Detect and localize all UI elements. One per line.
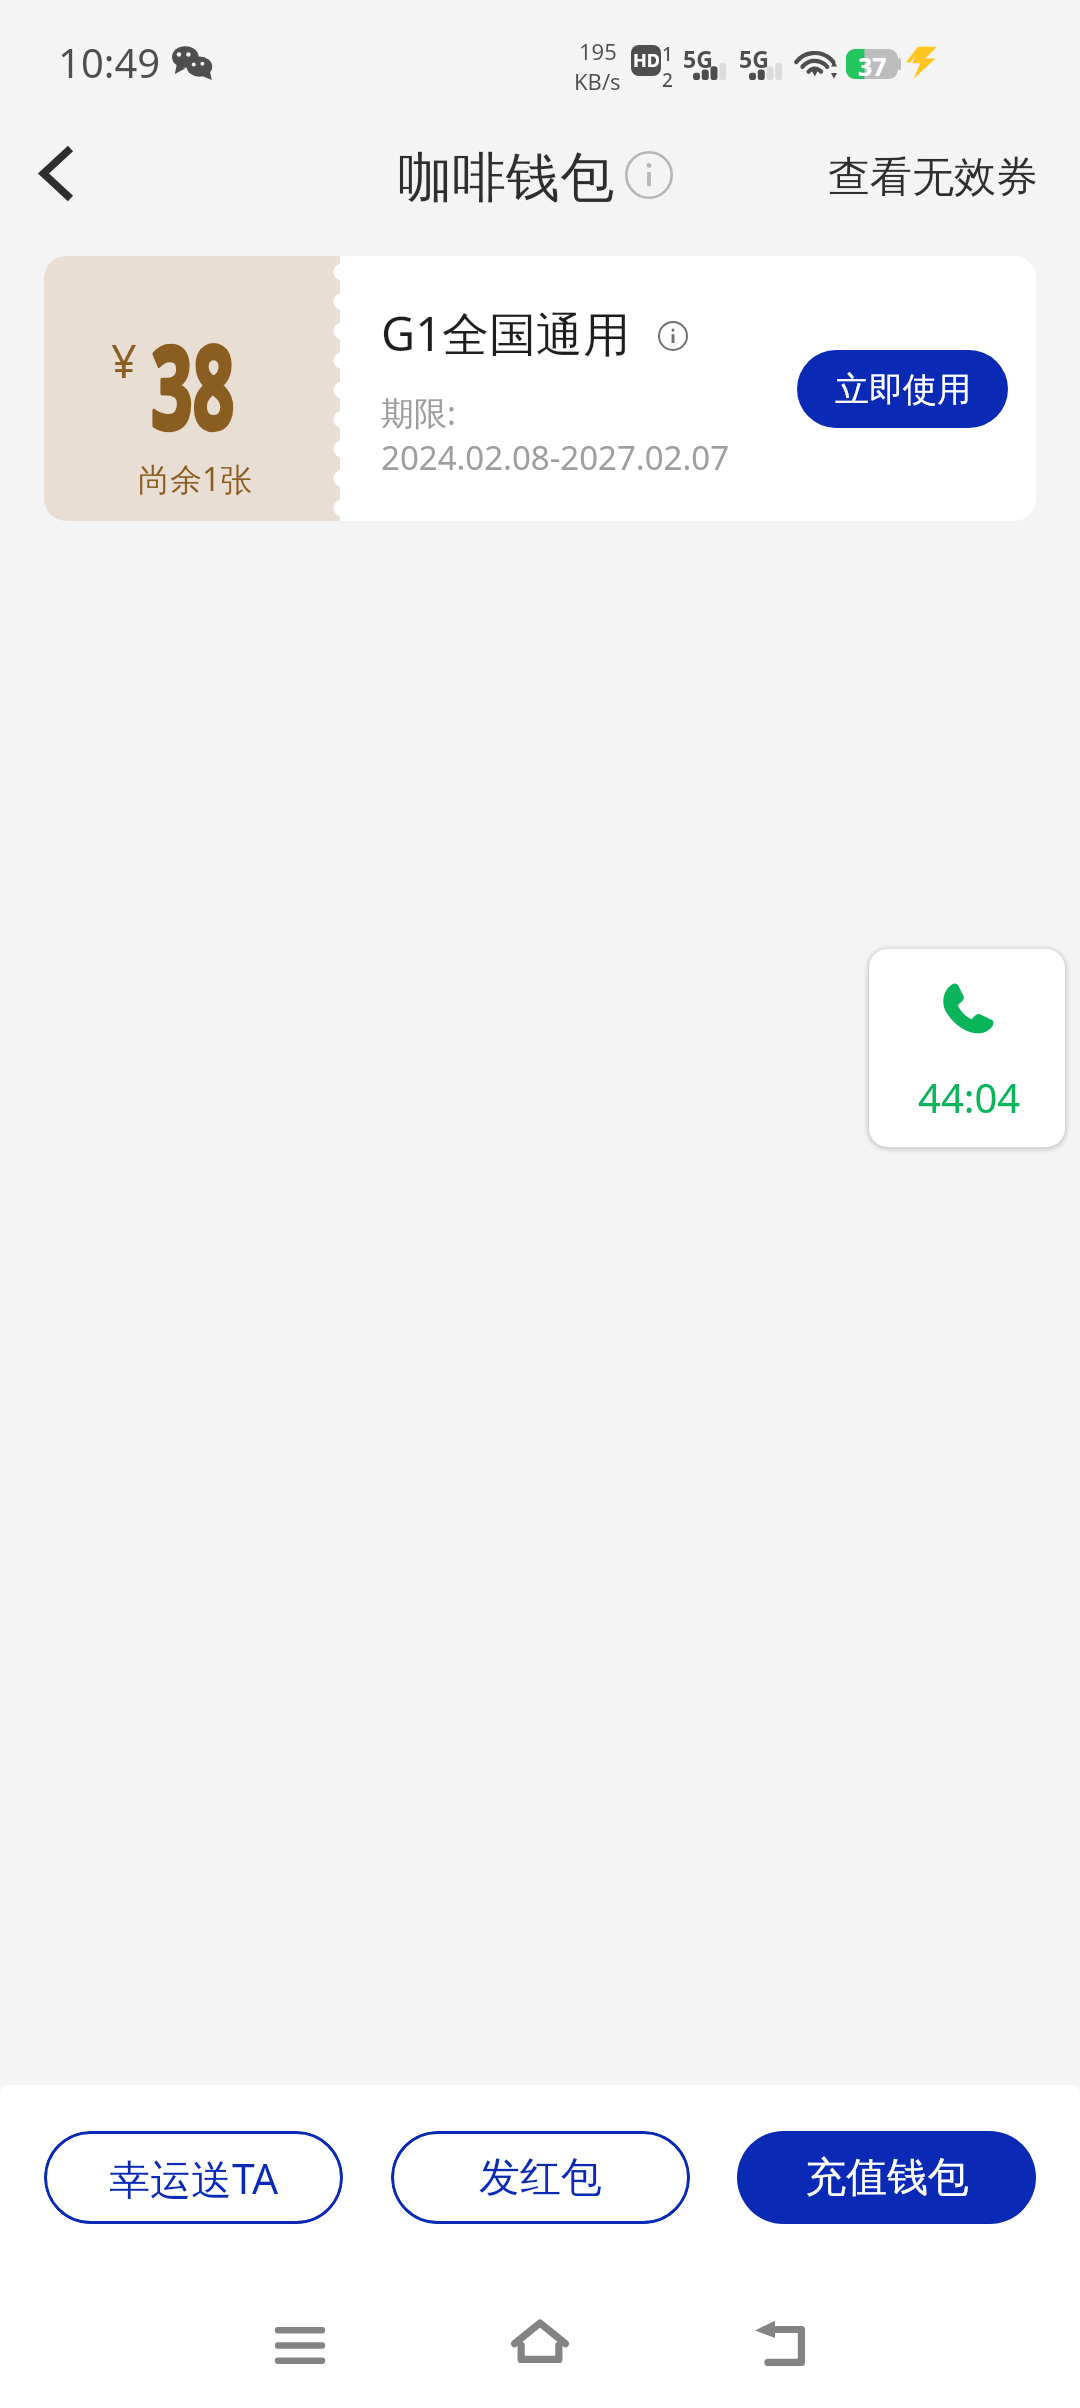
staticText: 发红包 bbox=[479, 2152, 602, 2204]
staticText: G1全国通用 bbox=[381, 301, 631, 365]
staticText: ¥ bbox=[111, 330, 137, 391]
button[interactable]: Back bbox=[17, 133, 97, 213]
button[interactable]: Back bbox=[720, 2289, 840, 2399]
staticText: 38 bbox=[151, 307, 235, 462]
staticText: 查看无效券 bbox=[828, 151, 1038, 204]
staticText: 37 bbox=[858, 49, 887, 79]
button[interactable]: 发红包 bbox=[391, 2131, 690, 2224]
button[interactable]: 幸运送TA bbox=[44, 2131, 343, 2224]
staticText: 38 bbox=[151, 307, 235, 462]
button[interactable]: Home bbox=[480, 2286, 600, 2396]
staticText: 幸运送TA bbox=[109, 2150, 279, 2206]
button[interactable]: Ongoing call bbox=[869, 949, 1065, 1147]
staticText: 5G bbox=[739, 43, 769, 74]
staticText: 5G bbox=[683, 43, 713, 74]
staticText: 咖啡钱包 bbox=[398, 144, 614, 212]
staticText: 立即使用 bbox=[835, 368, 971, 411]
button[interactable]: 查看无效券 bbox=[810, 134, 1055, 220]
staticText: 10:49 bbox=[58, 35, 161, 89]
button[interactable]: Info bbox=[620, 146, 677, 203]
staticText: 1 bbox=[662, 41, 673, 67]
staticText: 尚余1张 bbox=[138, 457, 253, 501]
button[interactable]: Recents bbox=[240, 2286, 360, 2396]
staticText: 充值钱包 bbox=[805, 2152, 969, 2204]
button[interactable]: 充值钱包 bbox=[737, 2131, 1036, 2224]
staticText: 44:04 bbox=[918, 1070, 1021, 1124]
staticText: 2024.02.08-2027.02.07 bbox=[381, 435, 730, 480]
button[interactable]: Coupon info bbox=[649, 312, 697, 360]
staticText: 195 bbox=[579, 36, 617, 66]
staticText: KB/s bbox=[574, 66, 621, 96]
staticText: HD bbox=[633, 48, 660, 73]
staticText: 2 bbox=[662, 67, 673, 93]
staticText: 期限: bbox=[381, 390, 456, 435]
button[interactable]: ¥ bbox=[44, 256, 1036, 521]
button[interactable]: 立即使用 bbox=[797, 350, 1008, 428]
